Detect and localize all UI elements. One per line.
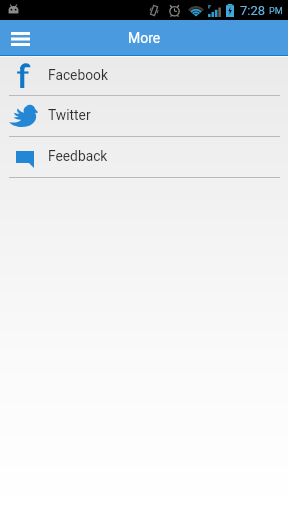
staticText: 7:28 <box>240 3 266 18</box>
button[interactable]: Twitter <box>0 96 288 136</box>
staticText: PM <box>269 6 283 17</box>
button[interactable]: Facebook <box>0 57 288 95</box>
staticText: More <box>128 30 161 46</box>
button[interactable]: Feedback <box>0 137 288 177</box>
staticText: Facebook <box>48 67 108 83</box>
staticText: Twitter <box>48 107 91 123</box>
staticText: Feedback <box>48 148 108 164</box>
button[interactable]: Open navigation menu <box>0 20 40 55</box>
